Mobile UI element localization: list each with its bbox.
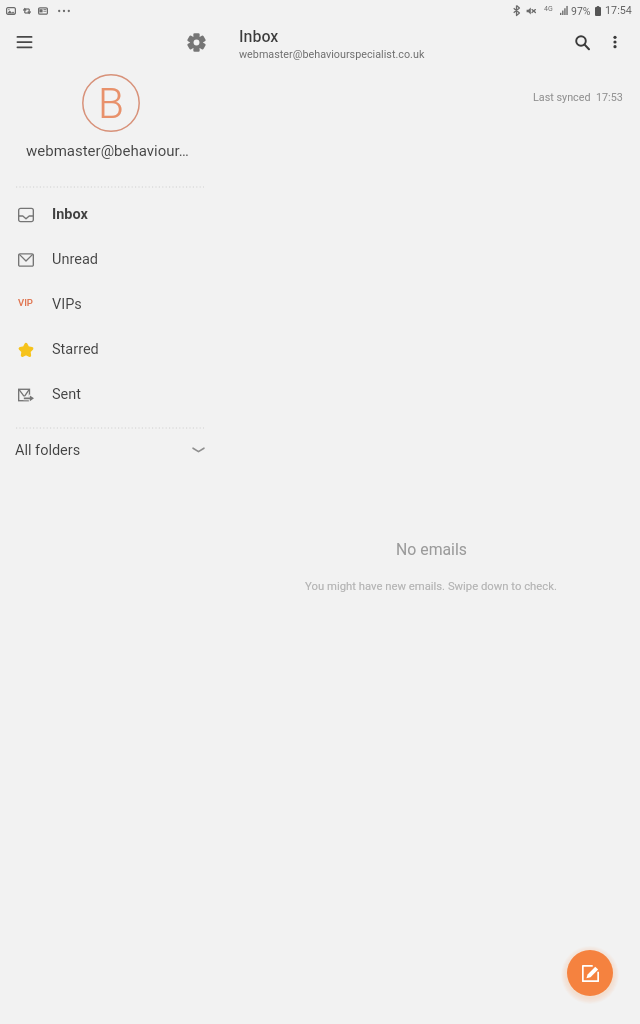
- button[interactable]: Starred: [0, 327, 220, 372]
- button[interactable]: More options: [595, 22, 634, 61]
- staticText: All folders: [15, 442, 81, 459]
- button[interactable]: Settings: [176, 22, 216, 62]
- button[interactable]: Search: [562, 22, 603, 63]
- button[interactable]: Compose email: [567, 950, 613, 996]
- staticText: Inbox: [239, 27, 279, 46]
- button[interactable]: Sent: [0, 372, 220, 417]
- staticText: webmaster@behaviour…: [26, 142, 189, 160]
- button[interactable]: B: [0, 66, 220, 168]
- staticText: Sent: [52, 386, 82, 403]
- staticText: Inbox: [52, 206, 88, 223]
- staticText: Unread: [52, 251, 98, 268]
- staticText: Starred: [52, 341, 99, 358]
- button[interactable]: VIP: [0, 282, 220, 327]
- staticText: 17:54: [605, 4, 632, 17]
- button[interactable]: Unread: [0, 237, 220, 282]
- staticText: Last synced 17:53: [533, 91, 623, 104]
- button[interactable]: Inbox: [0, 192, 220, 237]
- button[interactable]: All folders: [0, 428, 220, 473]
- staticText: No emails: [396, 540, 467, 559]
- button[interactable]: Open navigation drawer: [5, 26, 45, 58]
- staticText: B: [98, 79, 124, 128]
- staticText: webmaster@behaviourspecialist.co.uk: [239, 48, 425, 61]
- staticText: VIP: [18, 297, 33, 308]
- staticText: You might have new emails. Swipe down to…: [305, 580, 557, 593]
- staticText: VIPs: [52, 296, 82, 313]
- staticText: 4G: [544, 5, 553, 13]
- staticText: 97%: [571, 5, 591, 17]
